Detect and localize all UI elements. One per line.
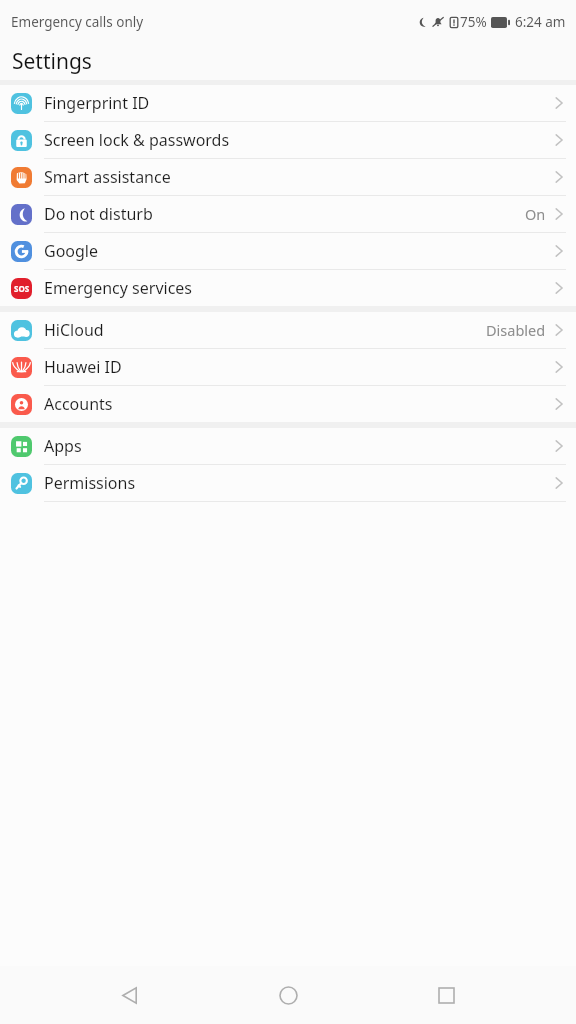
staticText: HiCloud (44, 319, 486, 341)
button[interactable]: Back (102, 967, 158, 1023)
button[interactable]: Home (260, 967, 316, 1023)
staticText: Settings (12, 47, 92, 76)
staticText: Emergency calls only (11, 13, 144, 31)
button[interactable]: Huawei ID (0, 349, 576, 385)
button[interactable]: Smart assistance (0, 159, 576, 195)
staticText: Screen lock & passwords (44, 129, 555, 151)
staticText: Fingerprint ID (44, 92, 555, 114)
button[interactable]: HiCloud (0, 312, 576, 348)
button[interactable]: Accounts (0, 386, 576, 422)
button[interactable]: Fingerprint ID (0, 85, 576, 121)
staticText: Apps (44, 435, 555, 457)
staticText: Disabled (486, 320, 546, 340)
staticText: Emergency services (44, 277, 555, 299)
button[interactable]: Screen lock & passwords (0, 122, 576, 158)
button[interactable]: Permissions (0, 465, 576, 501)
staticText: Smart assistance (44, 166, 555, 188)
button[interactable]: SOS (0, 270, 576, 306)
button[interactable]: Google (0, 233, 576, 269)
staticText: 6:24 am (515, 13, 566, 31)
button[interactable]: Do not disturb (0, 196, 576, 232)
staticText: SOS (14, 283, 30, 294)
staticText: Accounts (44, 393, 555, 415)
staticText: 75% (460, 13, 487, 31)
staticText: On (525, 204, 546, 224)
staticText: Permissions (44, 472, 555, 494)
staticText: Huawei ID (44, 356, 555, 378)
staticText: Do not disturb (44, 203, 525, 225)
staticText: Google (44, 240, 555, 262)
button[interactable]: Apps (0, 428, 576, 464)
button[interactable]: Recent apps (418, 967, 474, 1023)
